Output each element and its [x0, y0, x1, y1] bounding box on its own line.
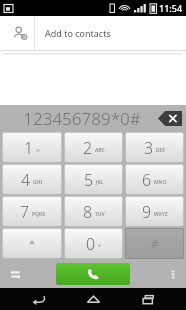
staticText: 8: [83, 201, 93, 223]
button[interactable]: 7: [2, 196, 62, 227]
staticText: TUV: [95, 211, 105, 218]
button[interactable]: Add to contacts icon: [0, 16, 186, 50]
button[interactable]: Backspace: [158, 111, 182, 126]
staticText: PQRS: [32, 211, 45, 218]
button[interactable]: 4: [2, 164, 62, 195]
staticText: #: [151, 236, 159, 251]
staticText: 3: [144, 137, 154, 159]
button[interactable]: 3: [125, 132, 184, 163]
button[interactable]: Back: [21, 288, 55, 310]
staticText: 6: [142, 169, 152, 191]
button[interactable]: 0: [64, 228, 123, 259]
staticText: GHI: [33, 179, 43, 186]
button[interactable]: 2: [64, 132, 123, 163]
button[interactable]: Switch input: [0, 260, 30, 288]
staticText: 0: [86, 233, 96, 255]
button[interactable]: #: [125, 228, 184, 259]
staticText: ∞: [36, 147, 41, 153]
other: Add to contacts icon: [6, 19, 34, 47]
staticText: 2: [83, 137, 93, 159]
button[interactable]: 8: [64, 196, 123, 227]
staticText: JKL: [96, 179, 104, 186]
staticText: 7: [20, 201, 30, 223]
button[interactable]: 6: [125, 164, 184, 195]
staticText: 11:54: [159, 2, 183, 14]
staticText: WXYZ: [154, 211, 168, 218]
staticText: Add to contacts: [45, 27, 111, 39]
staticText: ABC: [95, 147, 105, 154]
staticText: *: [29, 236, 36, 251]
button[interactable]: 1: [2, 132, 62, 163]
button[interactable]: 9: [125, 196, 184, 227]
button[interactable]: More options: [160, 261, 186, 287]
button[interactable]: Home: [76, 288, 110, 310]
staticText: 1: [24, 137, 34, 159]
staticText: 5: [84, 169, 94, 191]
staticText: 9: [142, 201, 152, 223]
button[interactable]: *: [2, 228, 62, 259]
button[interactable]: Recent apps: [131, 288, 165, 310]
button[interactable]: Call: [56, 263, 130, 285]
button[interactable]: 5: [64, 164, 123, 195]
staticText: +: [98, 243, 101, 250]
staticText: 123456789*0#: [0, 107, 164, 130]
staticText: MNO: [154, 179, 167, 186]
staticText: DEF: [156, 147, 166, 154]
staticText: 4: [21, 169, 31, 191]
